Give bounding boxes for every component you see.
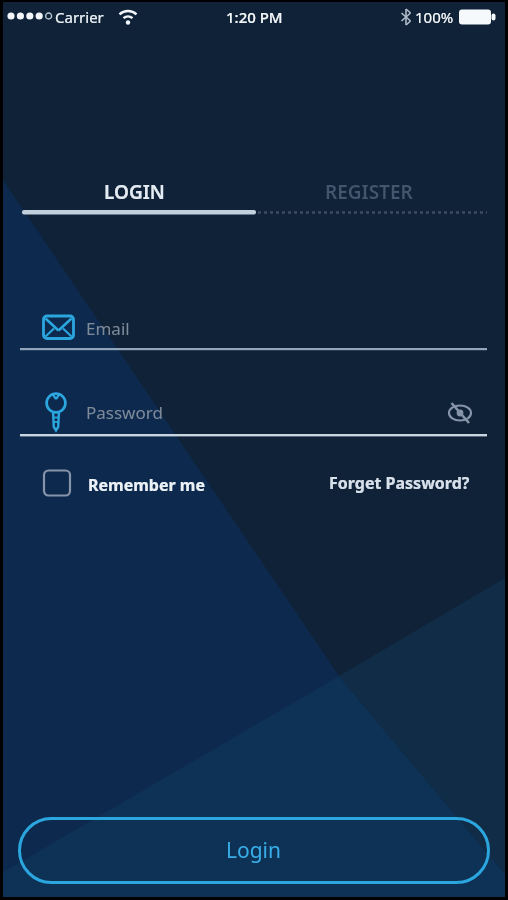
staticText: Login xyxy=(226,836,282,865)
button[interactable]: REGISTER xyxy=(252,175,486,209)
staticText: Carrier xyxy=(55,7,104,27)
button[interactable] xyxy=(44,468,184,498)
button[interactable]: LOGIN xyxy=(7,175,261,209)
button[interactable]: Forget Password? xyxy=(260,468,488,498)
button[interactable]: Email xyxy=(20,308,487,350)
button[interactable]: Remember me xyxy=(88,474,205,496)
staticText: Forget Password? xyxy=(329,472,470,494)
staticText: REGISTER xyxy=(325,179,413,205)
staticText: 1:20 PM xyxy=(226,7,283,27)
staticText: LOGIN xyxy=(104,179,165,205)
button[interactable]: Password xyxy=(20,393,487,435)
staticText: Password xyxy=(86,401,163,424)
staticText: Email xyxy=(86,317,130,340)
button[interactable] xyxy=(442,396,478,430)
button[interactable]: Login xyxy=(18,817,490,884)
staticText: 100% xyxy=(415,7,454,27)
